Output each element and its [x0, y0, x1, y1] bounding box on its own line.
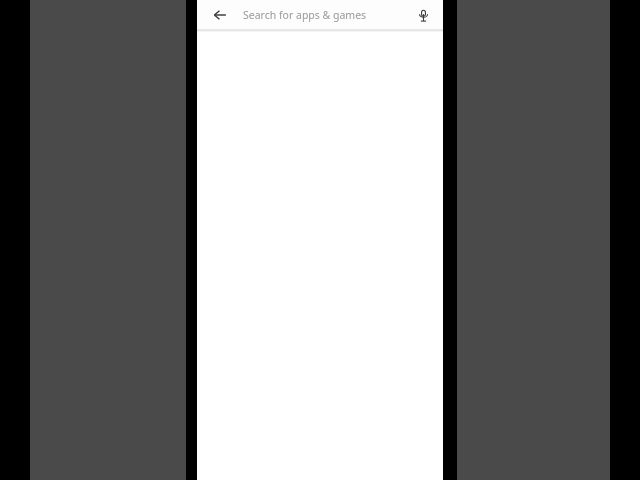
button[interactable]: Navigate up: [206, 1, 234, 29]
button[interactable]: Search for apps & games: [243, 0, 409, 29]
button[interactable]: Voice search: [409, 1, 437, 29]
staticText: Search for apps & games: [243, 8, 367, 22]
